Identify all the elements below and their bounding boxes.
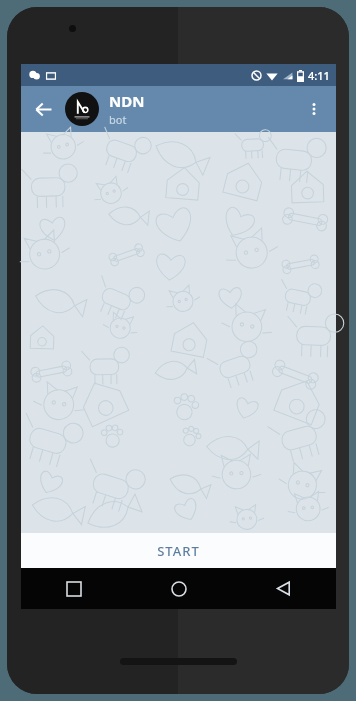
button[interactable]: START xyxy=(21,533,336,568)
button[interactable]: Recent apps xyxy=(21,568,126,609)
button[interactable]: More options xyxy=(292,87,336,131)
staticText: START xyxy=(157,542,200,560)
staticText: 4:11 xyxy=(308,68,330,83)
button[interactable]: Back xyxy=(21,87,65,131)
button[interactable]: Home xyxy=(126,568,231,609)
staticText: NDN xyxy=(109,91,145,111)
button[interactable]: Back xyxy=(231,568,336,609)
button[interactable]: NDN bot avatar xyxy=(65,92,99,126)
staticText: bot xyxy=(109,112,127,127)
button[interactable]: NDN xyxy=(109,91,292,127)
